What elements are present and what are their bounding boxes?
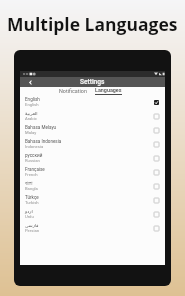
button[interactable]: فارسی: [20, 221, 165, 235]
staticText: Urdu: [25, 214, 34, 219]
button[interactable]: العربية: [20, 109, 165, 123]
staticText: Notification: [59, 88, 87, 94]
staticText: Russian: [25, 158, 40, 163]
button[interactable]: Türkçe: [20, 193, 165, 207]
staticText: French: [25, 172, 38, 177]
staticText: فارسی: [25, 223, 39, 228]
staticText: Bahasa Melayu: [25, 125, 57, 130]
button[interactable]: Back: [25, 77, 35, 87]
staticText: Indonesia: [25, 144, 44, 149]
staticText: Malay: [25, 130, 37, 135]
staticText: Française: [25, 167, 45, 172]
button[interactable]: Languages: [93, 87, 124, 95]
button[interactable]: Française: [20, 165, 165, 179]
staticText: العربية: [25, 111, 38, 116]
staticText: Multiple Languages: [7, 12, 178, 36]
staticText: Persian: [25, 228, 40, 233]
staticText: Turkish: [25, 200, 39, 205]
button[interactable]: русский: [20, 151, 165, 165]
staticText: English: [25, 97, 40, 102]
button[interactable]: Notification: [56, 88, 90, 94]
staticText: Bangla: [25, 186, 38, 191]
staticText: Bahasa Indonesia: [25, 139, 62, 144]
staticText: Settings: [80, 78, 105, 86]
staticText: বাংলা: [25, 181, 33, 186]
staticText: Arabic: [25, 116, 37, 121]
staticText: русский: [25, 153, 43, 158]
button[interactable]: اردو: [20, 207, 165, 221]
button[interactable]: English: [20, 95, 165, 109]
staticText: English: [25, 102, 39, 107]
button[interactable]: বাংলা: [20, 179, 165, 193]
button[interactable]: Bahasa Melayu: [20, 123, 165, 137]
staticText: اردو: [25, 209, 33, 214]
staticText: Languages: [95, 87, 122, 93]
button[interactable]: Bahasa Indonesia: [20, 137, 165, 151]
staticText: Türkçe: [25, 195, 39, 200]
